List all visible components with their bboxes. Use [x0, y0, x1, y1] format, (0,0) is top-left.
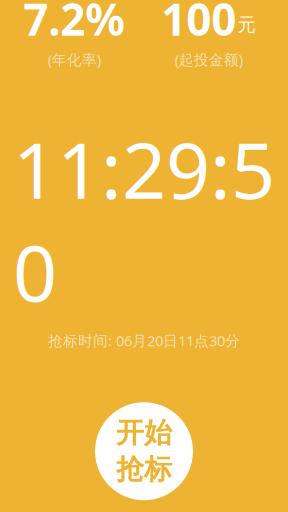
- staticText: 元: [237, 13, 256, 36]
- button[interactable]: 开始: [95, 402, 193, 500]
- staticText: (年化率): [48, 50, 101, 69]
- staticText: 开始: [116, 416, 172, 450]
- staticText: 100: [161, 0, 236, 48]
- staticText: 抢标: [116, 452, 172, 487]
- staticText: 抢标时间: 06月20日11点30分: [48, 331, 240, 350]
- staticText: (起投金额): [175, 50, 243, 69]
- staticText: 11:29:50: [13, 117, 275, 323]
- staticText: 7.2%: [23, 0, 125, 48]
